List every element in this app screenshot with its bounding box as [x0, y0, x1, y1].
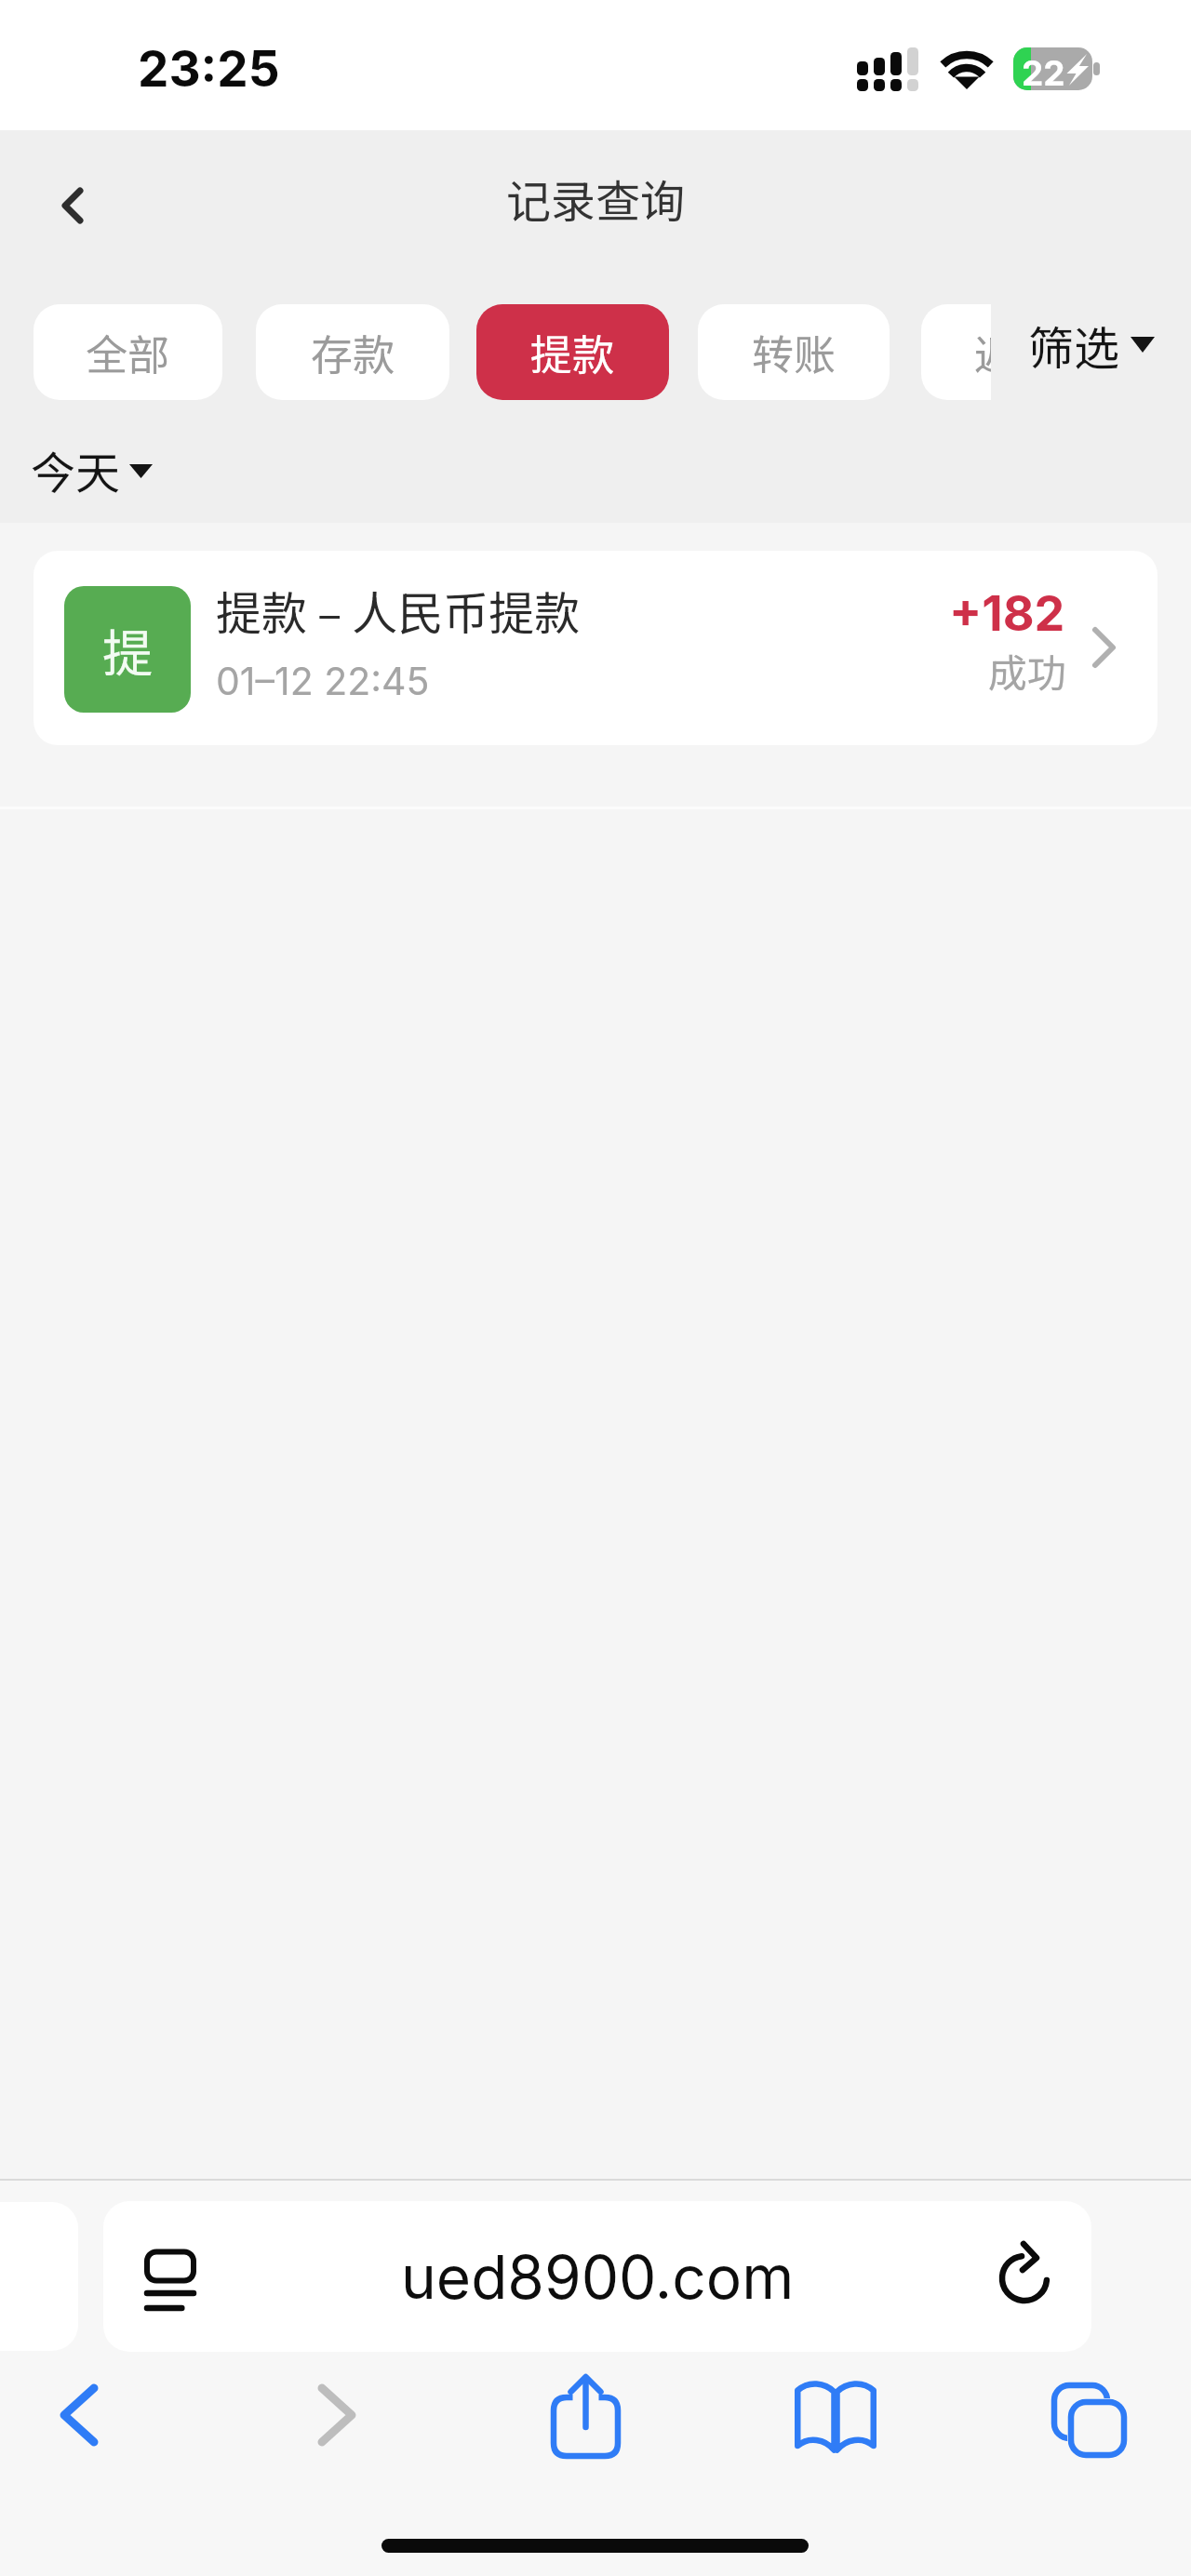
- button[interactable]: Back: [28, 2364, 130, 2466]
- button[interactable]: 提: [33, 551, 1158, 745]
- button[interactable]: Reload: [975, 2201, 1077, 2347]
- button[interactable]: 提款: [476, 304, 669, 400]
- staticText: 22: [1022, 52, 1065, 94]
- staticText: 提款 – 人民币提款: [216, 577, 581, 643]
- button[interactable]: 转账: [698, 304, 890, 400]
- button[interactable]: 返水金: [921, 304, 991, 400]
- button[interactable]: 存款: [256, 304, 449, 400]
- button[interactable]: 今天: [31, 437, 153, 495]
- staticText: 筛选: [1028, 312, 1120, 378]
- staticText: 返水金: [974, 322, 991, 382]
- staticText: ued8900.com: [401, 2241, 795, 2313]
- button[interactable]: ued8900.com: [103, 2201, 1091, 2352]
- button[interactable]: 全部: [33, 304, 222, 400]
- button[interactable]: Share: [534, 2364, 636, 2466]
- button[interactable]: Bookmarks: [784, 2366, 887, 2468]
- staticText: 提款: [530, 322, 615, 382]
- staticText: 记录查询: [506, 166, 686, 231]
- staticText: 转账: [752, 322, 836, 382]
- staticText: 全部: [86, 322, 170, 382]
- staticText: 成功: [988, 642, 1067, 699]
- staticText: 23:25: [138, 39, 280, 99]
- staticText: 存款: [311, 322, 395, 382]
- staticText: +182: [949, 584, 1065, 643]
- staticText: 提: [102, 613, 153, 686]
- button[interactable]: Tabs: [1036, 2365, 1138, 2467]
- button[interactable]: 筛选: [991, 297, 1186, 393]
- button[interactable]: Forward: [286, 2364, 388, 2466]
- button[interactable]: Back: [30, 163, 115, 248]
- button[interactable]: Page settings: [119, 2205, 221, 2352]
- staticText: 今天: [31, 437, 121, 495]
- staticText: 01–12 22:45: [216, 658, 430, 704]
